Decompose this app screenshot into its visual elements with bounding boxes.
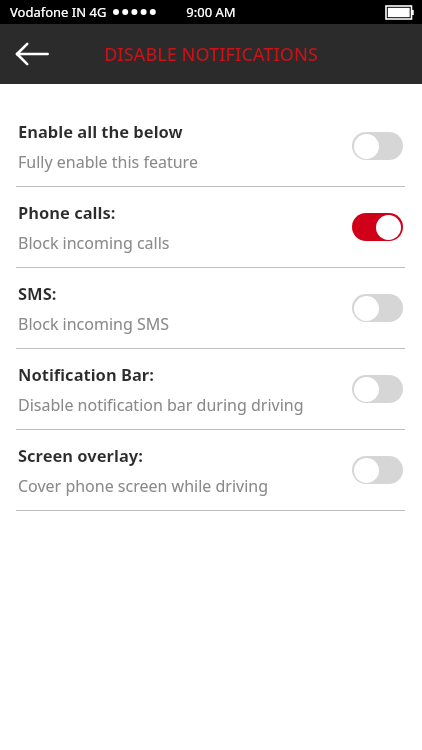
button[interactable]: Toggle off xyxy=(352,294,403,322)
staticText: Disable notification bar during driving xyxy=(18,394,304,416)
staticText: Block incoming calls xyxy=(18,232,170,254)
button[interactable]: Phone calls: xyxy=(0,187,422,267)
staticText: 9:00 AM xyxy=(186,3,236,21)
staticText: DISABLE NOTIFICATIONS xyxy=(104,42,318,67)
staticText: Phone calls: xyxy=(18,201,116,223)
staticText: Notification Bar: xyxy=(18,363,154,385)
button[interactable]: Notification Bar: xyxy=(0,349,422,429)
button[interactable]: Back xyxy=(8,30,56,78)
button[interactable]: Screen overlay: xyxy=(0,430,422,510)
staticText: SMS: xyxy=(18,282,57,304)
button[interactable]: SMS: xyxy=(0,268,422,348)
staticText: Vodafone IN 4G xyxy=(10,3,107,21)
button[interactable]: Enable all the below xyxy=(0,106,422,186)
staticText: Enable all the below xyxy=(18,120,183,142)
button[interactable]: Toggle off xyxy=(352,132,403,160)
staticText: Block incoming SMS xyxy=(18,313,170,335)
button[interactable]: Toggle off xyxy=(352,456,403,484)
button[interactable]: Toggle off xyxy=(352,375,403,403)
staticText: Cover phone screen while driving xyxy=(18,475,269,497)
staticText: Screen overlay: xyxy=(18,444,143,466)
button[interactable]: Toggle on xyxy=(352,213,403,241)
staticText: Fully enable this feature xyxy=(18,151,198,173)
